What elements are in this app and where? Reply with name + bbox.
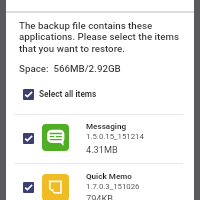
staticText: The backup file contains these bbox=[19, 20, 153, 31]
button[interactable] bbox=[6, 83, 194, 107]
staticText: 1.5.0.15_151214 bbox=[86, 132, 144, 141]
button[interactable] bbox=[6, 114, 194, 164]
staticText: Space: 566MB/2.92GB bbox=[19, 63, 121, 74]
staticText: applications. Please select the items bbox=[19, 31, 180, 42]
other: Messaging bbox=[42, 124, 69, 151]
staticText: 1.7.0.3_151026 bbox=[86, 182, 140, 191]
staticText: that you want to restore. bbox=[19, 43, 125, 54]
staticText: 4.31MB bbox=[86, 144, 118, 155]
button[interactable] bbox=[6, 163, 194, 200]
staticText: Select all items bbox=[39, 89, 97, 99]
staticText: Quick Memo bbox=[86, 171, 132, 180]
staticText: Messaging bbox=[86, 121, 127, 130]
staticText: 794KB bbox=[86, 193, 113, 200]
other: Quick Memo bbox=[42, 174, 69, 200]
